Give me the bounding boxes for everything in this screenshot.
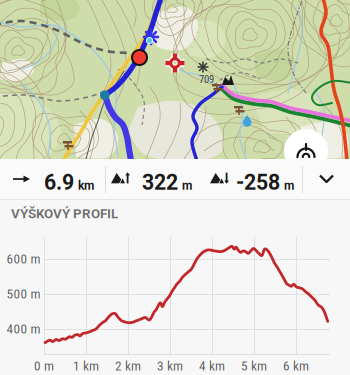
staticText: 3 km bbox=[157, 358, 183, 374]
staticText: 600 m bbox=[6, 251, 40, 267]
staticText: 400 m bbox=[6, 321, 40, 337]
button[interactable]: -258 bbox=[205, 159, 302, 199]
staticText: 4 km bbox=[199, 358, 225, 374]
staticText: km bbox=[78, 179, 94, 193]
staticText: 0 m bbox=[34, 358, 54, 374]
staticText: 322 bbox=[142, 170, 178, 195]
staticText: 709 bbox=[199, 73, 214, 85]
staticText: -258 bbox=[236, 170, 280, 195]
staticText: 6.9 bbox=[44, 170, 74, 195]
button[interactable]: 6.9 bbox=[0, 159, 105, 199]
staticText: 5 km bbox=[241, 358, 267, 374]
staticText: 500 m bbox=[6, 286, 40, 302]
staticText: m bbox=[182, 179, 192, 193]
button[interactable]: 322 bbox=[106, 159, 205, 199]
staticText: VÝŠKOVÝ PROFIL bbox=[11, 206, 118, 222]
staticText: 2 km bbox=[115, 358, 141, 374]
staticText: m bbox=[284, 179, 294, 193]
button[interactable]: Collapse statistics bbox=[303, 159, 350, 199]
staticText: 1 km bbox=[73, 358, 99, 374]
staticText: 6 km bbox=[283, 358, 309, 374]
